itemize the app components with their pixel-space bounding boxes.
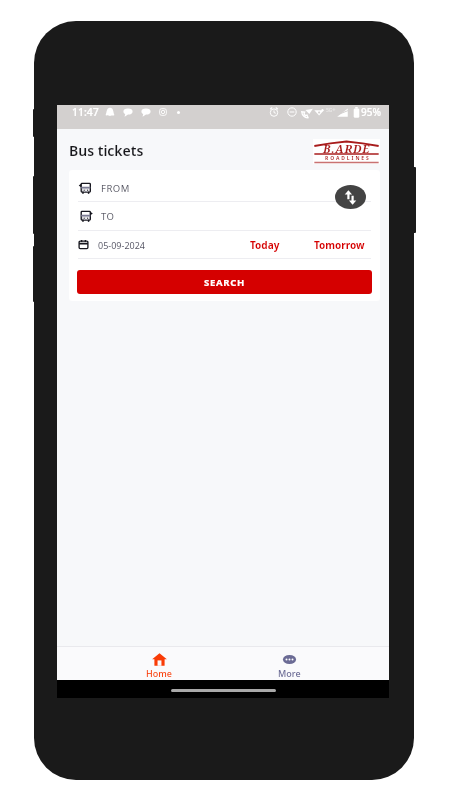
staticText: 5G+ (326, 107, 336, 114)
staticText: More (278, 667, 301, 679)
button[interactable]: TO (69, 202, 380, 230)
button[interactable]: FROM (69, 170, 380, 201)
staticText: Today (250, 238, 280, 252)
staticText: 11:47 (72, 105, 99, 119)
staticText: B.ARDE (323, 141, 371, 156)
staticText: FROM (101, 182, 130, 195)
button[interactable]: Swap from and to (335, 185, 366, 209)
button[interactable]: Today (245, 233, 285, 257)
staticText: ROADLINES (325, 155, 371, 162)
staticText: Home (146, 667, 172, 679)
staticText: 05-09-2024 (98, 239, 145, 251)
staticText: Tomorrow (314, 238, 365, 252)
staticText: Bus tickets (69, 141, 144, 160)
button[interactable]: More (262, 647, 317, 680)
staticText: 95% (361, 105, 381, 119)
button[interactable]: Home (130, 647, 188, 680)
button[interactable]: SEARCH (77, 270, 372, 294)
staticText: TO (101, 210, 115, 223)
staticText: SEARCH (204, 276, 245, 289)
button[interactable]: Tomorrow (309, 233, 366, 257)
